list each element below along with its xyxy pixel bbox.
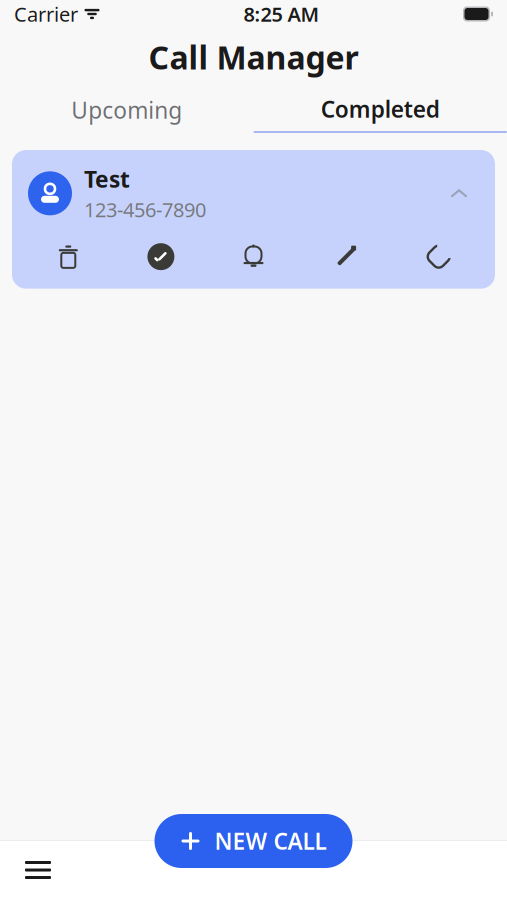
button[interactable]: Mark complete [115,237,207,277]
button[interactable]: Delete [22,237,115,277]
button[interactable]: Upcoming [0,87,253,133]
button[interactable]: Edit [300,237,392,277]
staticText: Upcoming [71,95,182,125]
button[interactable]: Collapse [439,175,479,211]
button[interactable]: Menu [12,846,64,894]
staticText: Call Manager [148,36,358,78]
button[interactable]: Reminder [207,237,300,277]
button[interactable]: Completed [253,87,507,133]
button[interactable]: NEW CALL [154,814,352,868]
staticText: NEW CALL [214,826,326,856]
staticText: Carrier [14,1,78,27]
staticText: Test [84,164,130,194]
button[interactable]: Call [392,237,485,277]
staticText: Completed [321,94,440,124]
staticText: 8:25 AM [243,1,319,27]
staticText: 123-456-7890 [84,196,206,223]
